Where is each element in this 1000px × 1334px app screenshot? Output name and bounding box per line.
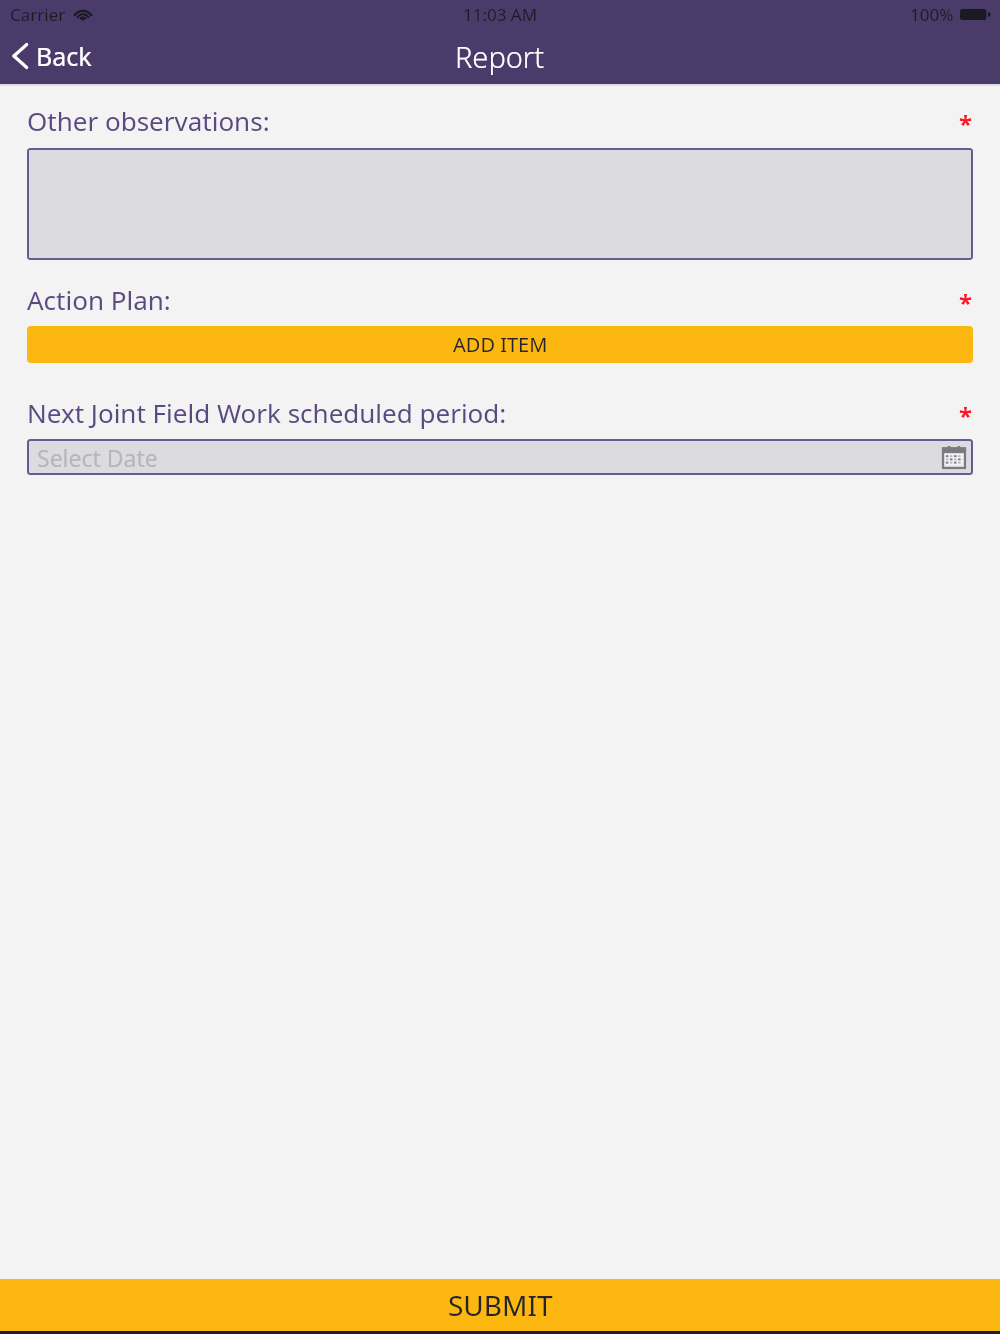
staticText: * [959,399,973,432]
staticText: Select Date [37,442,158,473]
button[interactable]: Back [0,33,106,79]
staticText: Back [36,39,92,73]
button[interactable]: SUBMIT [0,1279,1000,1331]
button[interactable] [27,148,973,260]
staticText: 11:03 AM [463,3,538,26]
staticText: * [959,286,973,319]
staticText: Carrier [10,3,66,26]
staticText: Other observations: [27,103,270,138]
staticText: ADD ITEM [453,331,548,358]
staticText: Next Joint Field Work scheduled period: [27,395,507,430]
button[interactable]: Select Date [27,439,973,475]
staticText: Report [455,37,545,76]
other: Open calendar [943,446,965,468]
staticText: 100% [910,3,954,26]
button[interactable]: ADD ITEM [27,326,973,363]
staticText: * [959,107,973,140]
staticText: Action Plan: [27,282,171,317]
staticText: SUBMIT [448,1286,553,1324]
